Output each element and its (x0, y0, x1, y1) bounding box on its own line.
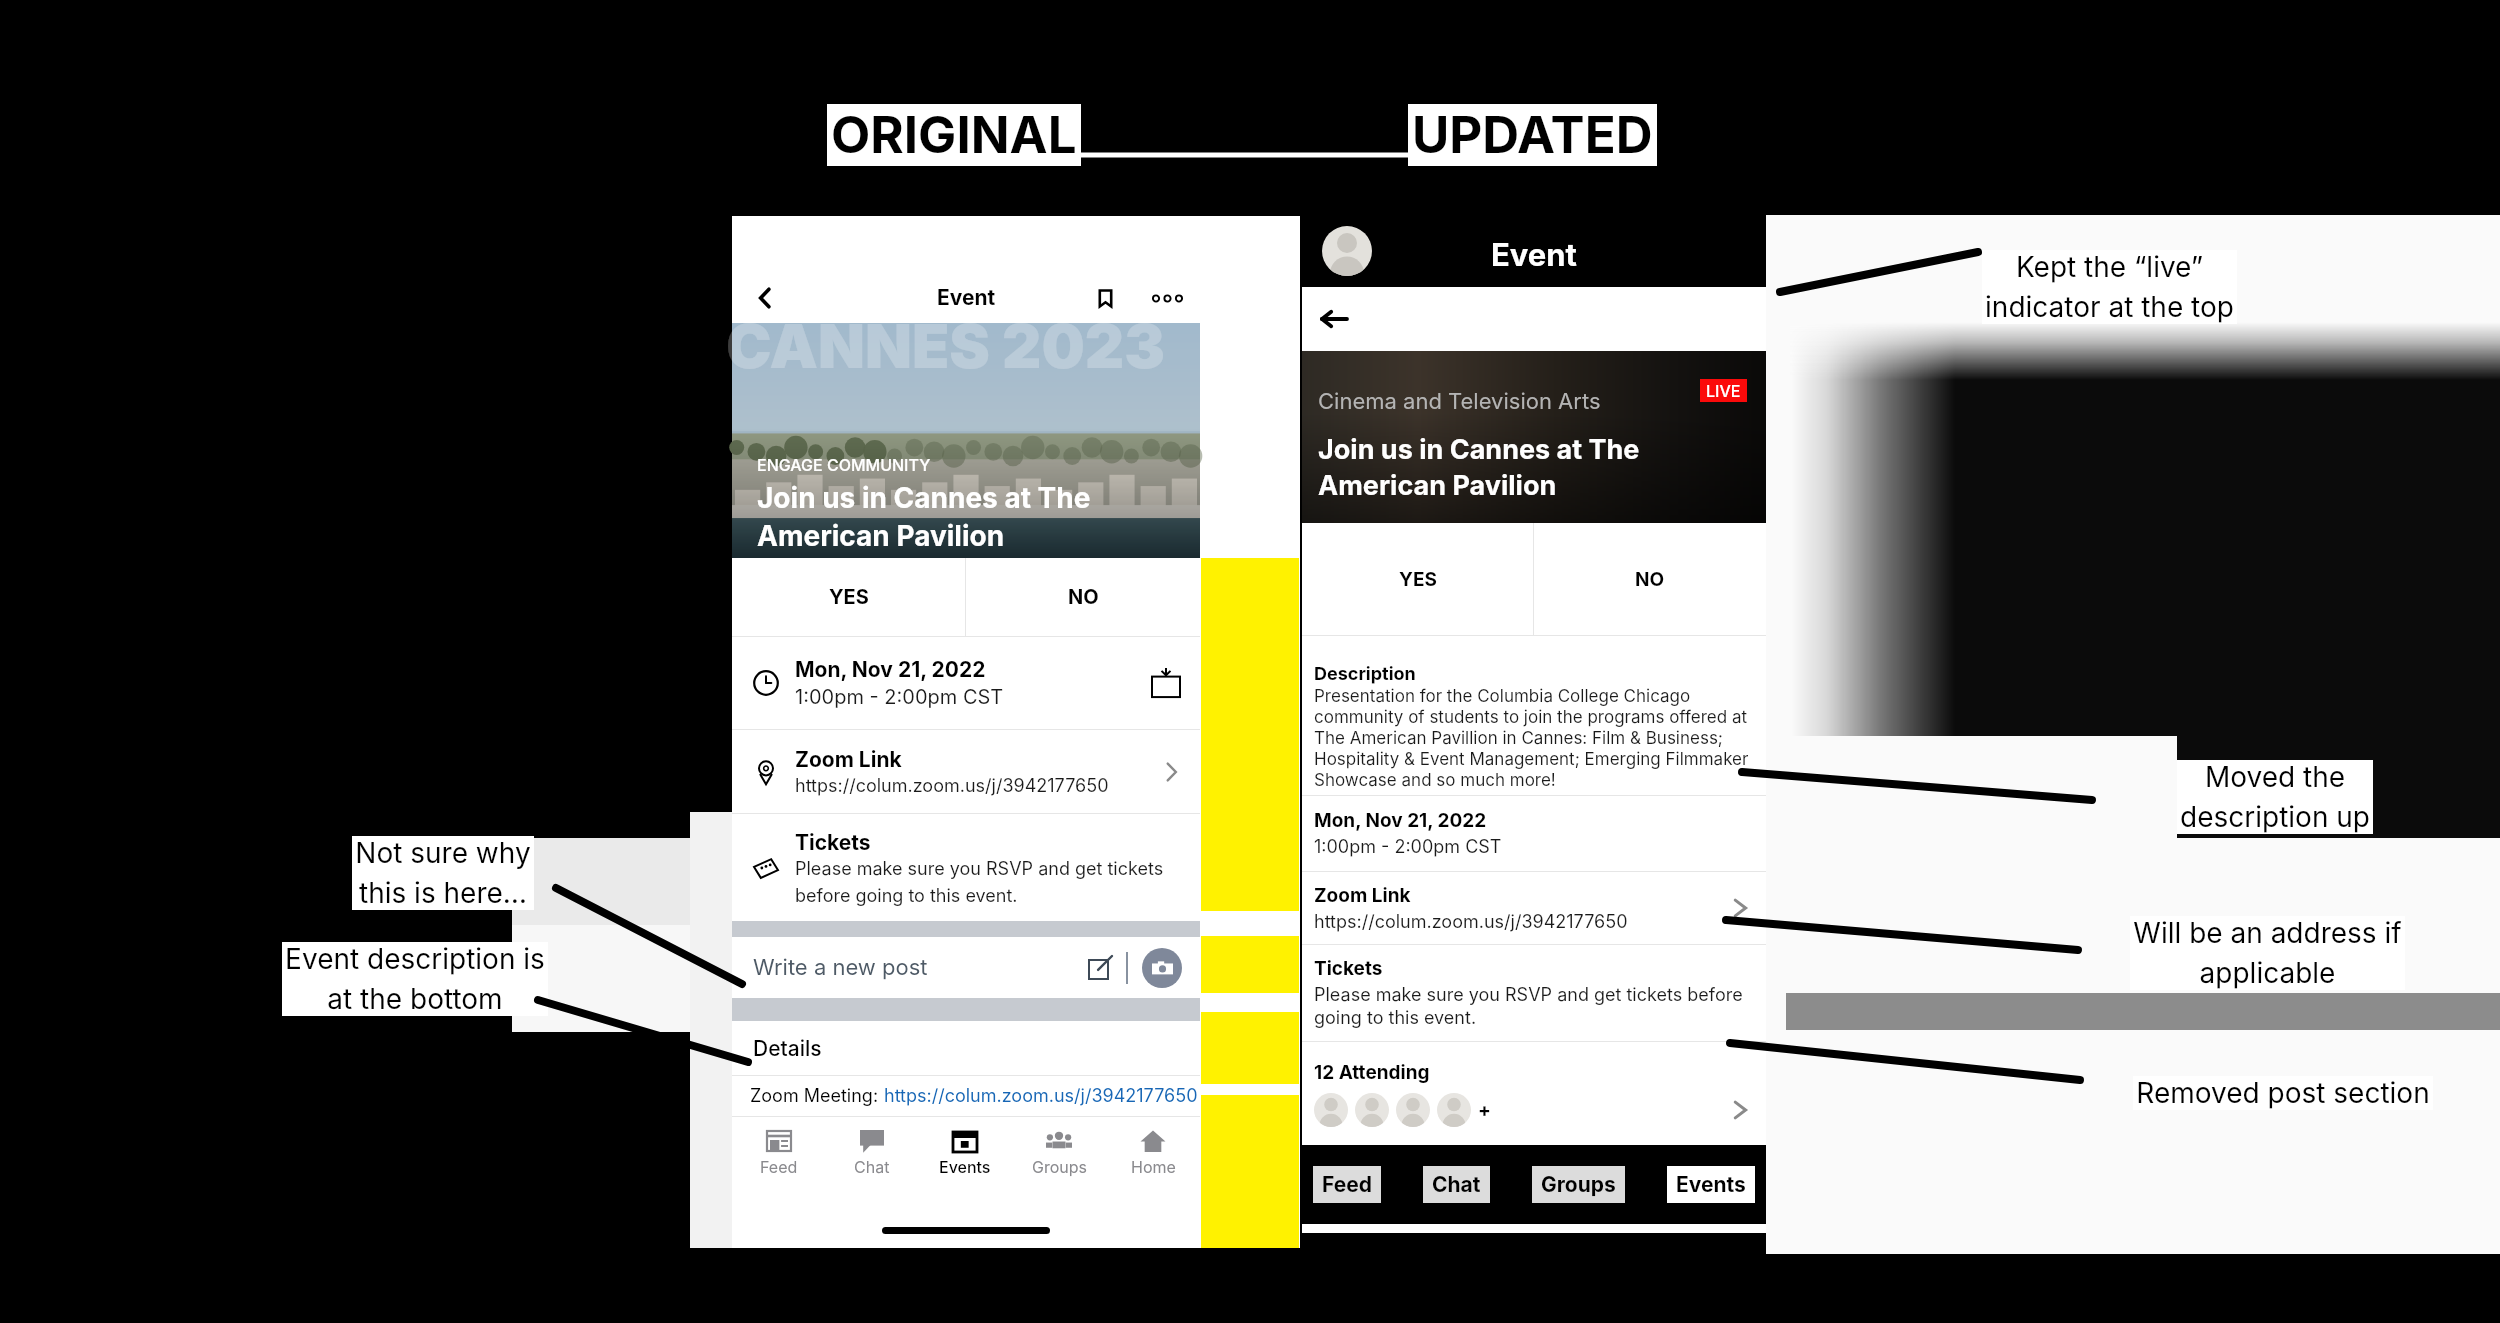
staticText: UPDATED (1412, 104, 1653, 166)
staticText: 1:00pm - 2:00pm CST (795, 685, 1004, 709)
button[interactable]: NO (1534, 523, 1766, 635)
staticText: https://colum.zoom.us/j/3942177650 (795, 775, 1109, 797)
staticText: LIVE (1706, 381, 1741, 400)
button[interactable]: Zoom Link (732, 730, 1200, 813)
staticText: CANNES 2023 (726, 309, 1166, 383)
button[interactable]: Events (918, 1128, 1012, 1176)
staticText: Details (753, 1036, 822, 1061)
staticText: Cinema and Television Arts (1318, 388, 1601, 415)
button[interactable]: Back (748, 281, 782, 315)
button[interactable]: NO (966, 558, 1200, 636)
staticText: Moved the description up (2180, 760, 2370, 834)
button[interactable]: Groups (1532, 1166, 1625, 1203)
button[interactable]: Home (1106, 1128, 1200, 1176)
staticText: 12 Attending (1314, 1061, 1430, 1084)
button[interactable]: More options (1148, 279, 1186, 317)
button[interactable]: Bookmark (1088, 281, 1122, 315)
staticText: YES (829, 585, 869, 609)
staticText: Write a new post (753, 954, 928, 981)
staticText: Chat (854, 1157, 890, 1176)
button[interactable]: Chat (1423, 1166, 1490, 1203)
staticText: Presentation for the Columbia College Ch… (1314, 686, 1749, 791)
staticText: Zoom Link (1314, 884, 1411, 907)
staticText: Mon, Nov 21, 2022 (1314, 809, 1487, 832)
button[interactable]: Tickets (1302, 945, 1766, 1041)
staticText: Chat (1432, 1172, 1481, 1197)
staticText: Events (939, 1157, 991, 1176)
staticText: NO (1068, 585, 1099, 609)
staticText: Please make sure you RSVP and get ticket… (795, 858, 1164, 906)
button[interactable]: Camera (1142, 948, 1182, 988)
staticText: Events (1676, 1172, 1746, 1197)
staticText: Not sure why this is here… (355, 836, 531, 910)
staticText: ENGAGE COMMUNITY (757, 455, 931, 474)
staticText: Event (1491, 236, 1577, 274)
staticText: Join us in Cannes at The American Pavili… (1318, 433, 1640, 501)
staticText: Please make sure you RSVP and get ticket… (1314, 984, 1743, 1029)
button[interactable]: Groups (1012, 1128, 1106, 1176)
staticText: + (1478, 1099, 1491, 1122)
staticText: Zoom Meeting: (750, 1085, 884, 1107)
button[interactable]: Feed (732, 1128, 825, 1176)
button[interactable]: Mon, Nov 21, 2022 (732, 637, 1200, 729)
staticText: Tickets (795, 830, 871, 855)
staticText: Zoom Link (795, 747, 902, 772)
button[interactable]: Zoom Link (1302, 872, 1766, 944)
staticText: NO (1635, 568, 1665, 591)
staticText: Event (937, 285, 996, 310)
button[interactable]: Tickets (732, 814, 1200, 921)
button[interactable]: Write a new post (732, 937, 1200, 998)
staticText: Event description is at the bottom (285, 942, 545, 1016)
staticText: Feed (760, 1157, 798, 1176)
staticText: ORIGINAL (831, 104, 1077, 166)
button[interactable]: Profile (1322, 226, 1372, 276)
staticText: Will be an address if applicable (2133, 916, 2402, 990)
staticText: Mon, Nov 21, 2022 (795, 657, 986, 682)
staticText: Groups (1032, 1157, 1087, 1176)
staticText: Home (1131, 1157, 1176, 1176)
button[interactable]: Back (1312, 297, 1356, 341)
button[interactable]: 12 Attending (1302, 1042, 1766, 1145)
button[interactable]: Feed (1313, 1166, 1381, 1203)
staticText: Groups (1541, 1172, 1616, 1197)
staticText: 1:00pm - 2:00pm CST (1314, 836, 1502, 858)
button[interactable]: Mon, Nov 21, 2022 (1302, 796, 1766, 871)
staticText: Feed (1322, 1172, 1372, 1197)
staticText: https://colum.zoom.us/j/3942177650 (1314, 911, 1628, 933)
staticText: Kept the “live” indicator at the top (1985, 250, 2234, 324)
button[interactable]: YES (732, 558, 965, 636)
staticText: YES (1399, 568, 1437, 591)
staticText: Description (1314, 663, 1416, 685)
button[interactable]: Chat (825, 1128, 918, 1176)
staticText: Join us in Cannes at The American Pavili… (757, 481, 1091, 552)
button[interactable]: Events (1667, 1166, 1755, 1203)
staticText: Removed post section (2136, 1076, 2430, 1110)
staticText: Tickets (1314, 957, 1383, 980)
staticText: https://colum.zoom.us/j/3942177650 (884, 1085, 1198, 1107)
button[interactable]: YES (1302, 523, 1533, 635)
